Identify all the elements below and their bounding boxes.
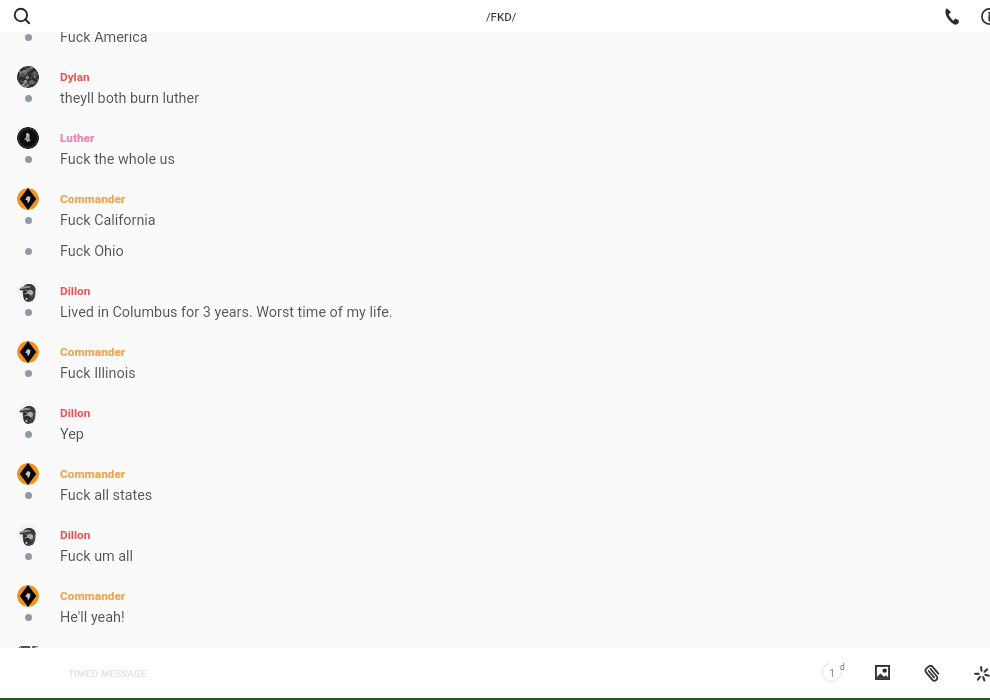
staticText: d xyxy=(840,662,845,672)
button[interactable]: Commander xyxy=(0,175,990,236)
staticText: Commander xyxy=(60,589,126,603)
staticText: Fuck California xyxy=(60,212,156,229)
staticText: 1 xyxy=(829,667,836,680)
staticText: Fuck the whole us xyxy=(60,151,175,168)
button[interactable]: Message timer 1 day xyxy=(812,648,852,696)
staticText: Yep xyxy=(60,426,84,443)
staticText: Dylan xyxy=(60,70,90,84)
staticText: Fuck America xyxy=(60,29,148,46)
button[interactable]: Attach file xyxy=(912,648,952,696)
staticText: Fuck um all xyxy=(60,548,134,565)
button[interactable]: Fuck Ohio xyxy=(0,236,990,267)
staticText: Dillon xyxy=(60,284,91,298)
staticText: Fuck Illinois xyxy=(60,365,136,382)
staticText: He'll yeah! xyxy=(60,609,125,626)
staticText: /FKD/ xyxy=(486,10,517,23)
staticText: Luther xyxy=(60,131,95,145)
button[interactable]: Dillon xyxy=(0,267,990,328)
button[interactable]: Effects xyxy=(960,648,990,696)
button[interactable]: Fuck America xyxy=(0,22,990,53)
staticText: Commander xyxy=(60,192,126,206)
button[interactable]: Gallery xyxy=(862,648,902,696)
staticText: Lived in Columbus for 3 years. Worst tim… xyxy=(60,304,393,321)
button[interactable]: Call xyxy=(933,0,973,32)
button[interactable]: Dylan xyxy=(0,53,990,114)
button[interactable]: Dillon xyxy=(0,511,990,572)
button[interactable]: Search xyxy=(6,0,40,32)
button[interactable]: Info xyxy=(969,0,990,32)
staticText: Fuck all states xyxy=(60,487,153,504)
button[interactable]: Commander xyxy=(0,450,990,511)
staticText: Commander xyxy=(60,467,126,481)
staticText: Dillon xyxy=(60,528,91,542)
button[interactable]: Commander xyxy=(0,328,990,389)
button[interactable]: Dillon xyxy=(0,389,990,450)
staticText: theyll both burn luther xyxy=(60,90,200,107)
staticText: TIMED MESSAGE xyxy=(68,668,147,679)
staticText: Fuck Ohio xyxy=(60,243,124,260)
button[interactable]: Commander xyxy=(0,572,990,633)
staticText: Dillon xyxy=(60,406,91,420)
staticText: Commander xyxy=(60,345,126,359)
button[interactable]: Luther xyxy=(0,114,990,175)
